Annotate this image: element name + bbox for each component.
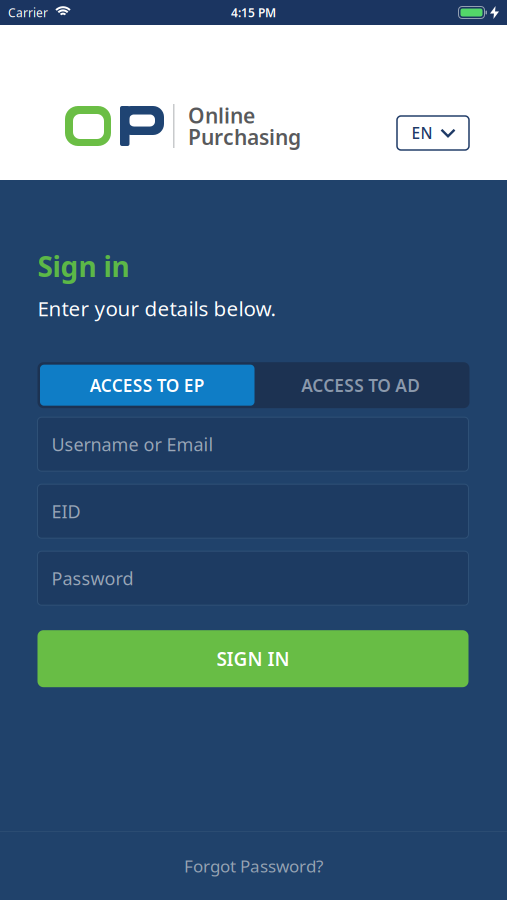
staticText: Purchasing [188,123,301,151]
staticText: Sign in [37,247,129,285]
button[interactable]: SIGN IN [37,630,468,687]
staticText: Online [188,101,255,130]
button[interactable]: Password [37,551,468,605]
staticText: Password [51,566,133,590]
button[interactable]: EID [37,484,468,538]
staticText: Username or Email [51,432,213,456]
button[interactable]: Forgot Password? [0,832,507,900]
staticText: EID [51,499,80,523]
staticText: ACCESS TO AD [301,373,420,397]
staticText: EN [411,122,432,143]
staticText: Forgot Password? [184,854,323,878]
button[interactable]: Language: English [397,116,469,150]
button[interactable]: ACCESS TO AD [254,365,467,406]
staticText: ACCESS TO EP [90,373,205,397]
button[interactable]: ACCESS TO EP [40,365,254,406]
staticText: SIGN IN [216,646,289,672]
staticText: Enter your details below. [37,294,276,322]
staticText: Carrier [8,4,48,21]
button[interactable]: Username or Email [37,417,468,471]
staticText: 4:15 PM [231,4,276,21]
